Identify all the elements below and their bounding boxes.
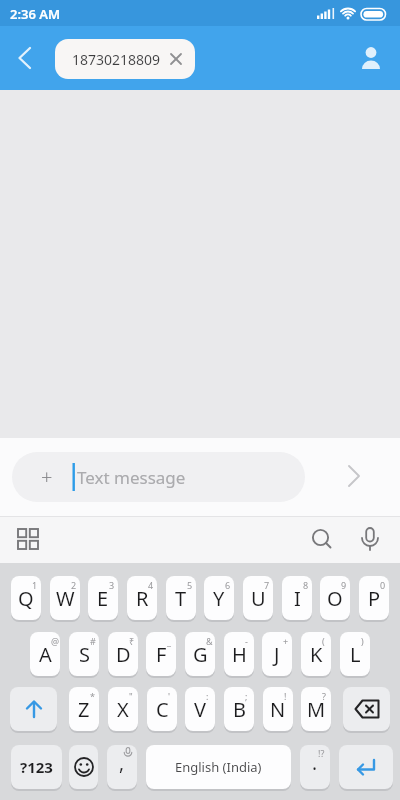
staticText: I	[294, 585, 301, 612]
staticText: T	[175, 585, 187, 612]
staticText: K	[310, 641, 323, 668]
staticText: J	[274, 641, 280, 668]
staticText: L	[350, 641, 361, 668]
button[interactable]	[10, 687, 57, 731]
button[interactable]	[351, 521, 389, 559]
button[interactable]: Y	[204, 576, 234, 620]
staticText: 8	[303, 579, 309, 591]
staticText: G	[193, 641, 208, 668]
staticText: !	[284, 690, 287, 702]
staticText: Y	[213, 585, 225, 612]
staticText: *	[90, 690, 95, 702]
staticText: :	[206, 690, 209, 702]
staticText: 6	[225, 579, 231, 591]
button[interactable]: W	[50, 576, 80, 620]
button[interactable]: J	[262, 632, 292, 676]
staticText: M	[307, 696, 326, 723]
staticText: -	[245, 635, 248, 647]
button[interactable]: U	[243, 576, 273, 620]
button[interactable]	[6, 65, 44, 103]
staticText: 3	[109, 579, 115, 591]
staticText: 0	[380, 579, 386, 591]
button[interactable]: ,	[107, 745, 137, 789]
button[interactable]: I	[282, 576, 312, 620]
button[interactable]: Z	[69, 687, 99, 731]
staticText: 18730218809	[72, 50, 161, 69]
button[interactable]: K	[301, 632, 331, 676]
staticText: 4	[148, 579, 154, 591]
button[interactable]	[69, 745, 98, 789]
staticText: U	[251, 585, 266, 612]
staticText: R	[136, 585, 149, 612]
staticText: #	[90, 635, 96, 647]
staticText: .	[312, 750, 318, 776]
staticText: O	[327, 585, 343, 612]
button[interactable]: T	[166, 576, 196, 620]
staticText: ?123	[20, 757, 53, 777]
button[interactable]	[10, 521, 48, 559]
button[interactable]: N	[263, 687, 293, 731]
button[interactable]	[303, 521, 341, 559]
staticText: "	[129, 690, 133, 702]
staticText: 9	[341, 579, 347, 591]
staticText: '	[168, 690, 171, 702]
button[interactable]: 18730218809	[55, 39, 195, 79]
button[interactable]: D	[108, 632, 138, 676]
staticText: X	[117, 696, 129, 723]
staticText: H	[232, 641, 247, 668]
button[interactable]: V	[185, 687, 215, 731]
staticText: Z	[78, 696, 90, 723]
button[interactable]	[334, 457, 374, 497]
staticText: W	[56, 585, 75, 612]
button[interactable]: B	[224, 687, 254, 731]
staticText: Text message	[77, 466, 186, 489]
staticText: S	[79, 641, 90, 668]
button[interactable]: H	[224, 632, 254, 676]
button[interactable]: L	[340, 632, 370, 676]
button[interactable]: X	[108, 687, 138, 731]
staticText: E	[97, 585, 109, 612]
staticText: +	[41, 463, 53, 490]
staticText: (	[322, 635, 325, 647]
staticText: )	[361, 635, 364, 647]
staticText: 2	[71, 579, 77, 591]
button[interactable]: F	[146, 632, 176, 676]
button[interactable]: M	[301, 687, 331, 731]
button[interactable]: .	[300, 745, 330, 789]
button[interactable]	[339, 745, 393, 789]
button[interactable]: P	[359, 576, 389, 620]
staticText: 2:36 AM	[10, 5, 61, 23]
button[interactable]: ?123	[11, 745, 62, 789]
staticText: ?	[322, 690, 326, 702]
staticText: _	[167, 635, 171, 647]
staticText: F	[156, 641, 167, 668]
button[interactable]: E	[88, 576, 118, 620]
button[interactable]: English (India)	[146, 745, 291, 789]
button[interactable]: R	[127, 576, 157, 620]
staticText: A	[39, 641, 52, 668]
button[interactable]: C	[147, 687, 177, 731]
staticText: @	[51, 635, 60, 647]
button[interactable]: A	[30, 632, 60, 676]
staticText: ,	[119, 750, 125, 776]
button[interactable]: +	[12, 452, 305, 502]
staticText: ;	[245, 690, 248, 702]
staticText: English (India)	[175, 758, 262, 776]
button[interactable]	[343, 687, 390, 731]
staticText: 7	[264, 579, 270, 591]
staticText: C	[156, 696, 169, 723]
staticText: +	[283, 635, 289, 647]
button[interactable]: S	[69, 632, 99, 676]
staticText: ₹	[129, 635, 135, 647]
staticText: P	[368, 585, 381, 612]
button[interactable]: G	[185, 632, 215, 676]
staticText: N	[270, 696, 286, 723]
staticText: B	[233, 696, 246, 723]
button[interactable]: O	[320, 576, 350, 620]
staticText: 5	[187, 579, 193, 591]
staticText: D	[116, 641, 131, 668]
button[interactable]: Q	[11, 576, 41, 620]
staticText: Q	[18, 585, 34, 612]
staticText: 1	[32, 579, 38, 591]
staticText: V	[194, 696, 206, 723]
